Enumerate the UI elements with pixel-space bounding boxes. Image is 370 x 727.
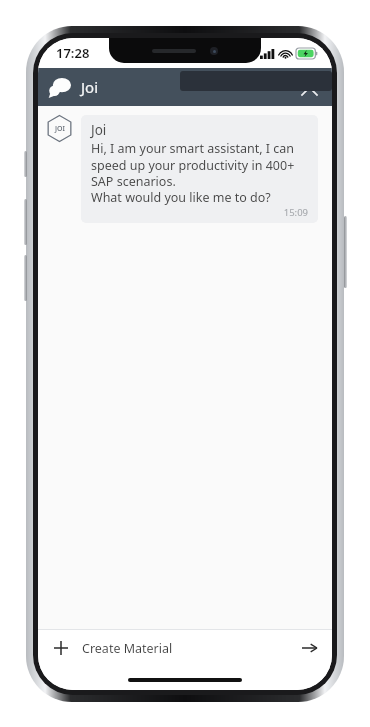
button[interactable]: Send <box>296 635 322 661</box>
staticText: Joi <box>91 121 107 139</box>
button[interactable]: Add attachment <box>48 635 74 661</box>
button[interactable]: Joi <box>81 115 318 223</box>
button[interactable]: Joi <box>48 75 99 99</box>
staticText: Hi, I am your smart assistant, I can spe… <box>91 140 308 189</box>
staticText: What would you like me to do? <box>91 189 271 206</box>
button[interactable]: Close <box>294 72 324 102</box>
staticText: JOI <box>55 124 65 134</box>
staticText: Create Material <box>82 640 173 657</box>
button[interactable]: Create Material <box>82 630 296 666</box>
staticText: 17:28 <box>56 44 90 62</box>
staticText: Joi <box>81 77 99 97</box>
staticText: 15:09 <box>91 206 308 219</box>
